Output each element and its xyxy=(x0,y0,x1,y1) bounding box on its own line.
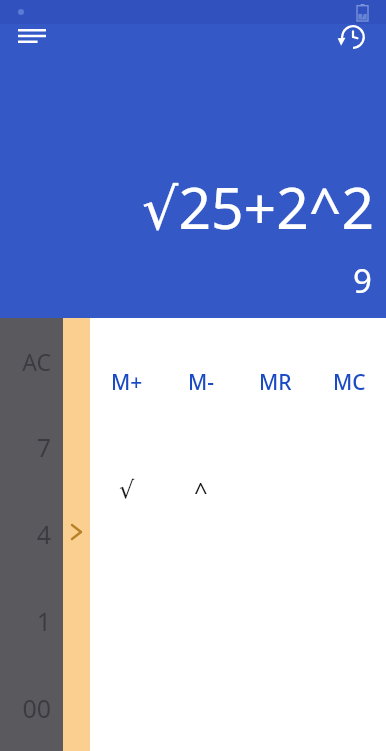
button[interactable]: History xyxy=(330,14,376,60)
button[interactable]: 7 xyxy=(0,404,63,490)
staticText: √ xyxy=(119,476,135,504)
button[interactable]: Expand keypad xyxy=(63,318,90,751)
button[interactable]: 4 xyxy=(0,490,63,577)
staticText: M- xyxy=(188,368,215,397)
staticText: 9 xyxy=(172,258,372,303)
button[interactable]: ^ xyxy=(164,468,238,512)
staticText: √25+2^2 xyxy=(44,168,374,246)
button[interactable]: MR xyxy=(238,362,312,402)
staticText: MC xyxy=(333,368,366,397)
button[interactable]: √ xyxy=(90,468,164,512)
staticText: AC xyxy=(0,346,51,377)
staticText: M+ xyxy=(111,368,143,397)
button[interactable]: M+ xyxy=(90,362,164,402)
button[interactable]: 00 xyxy=(0,664,63,751)
staticText: 7 xyxy=(0,430,51,464)
staticText: 4 xyxy=(0,517,51,551)
button[interactable]: Menu xyxy=(10,14,54,58)
staticText: MR xyxy=(259,368,292,397)
staticText: 00 xyxy=(0,691,51,725)
staticText: ^ xyxy=(194,474,208,507)
button[interactable]: M- xyxy=(164,362,238,402)
staticText: 1 xyxy=(0,604,51,638)
button[interactable]: AC xyxy=(0,318,63,404)
button[interactable]: MC xyxy=(312,362,386,402)
